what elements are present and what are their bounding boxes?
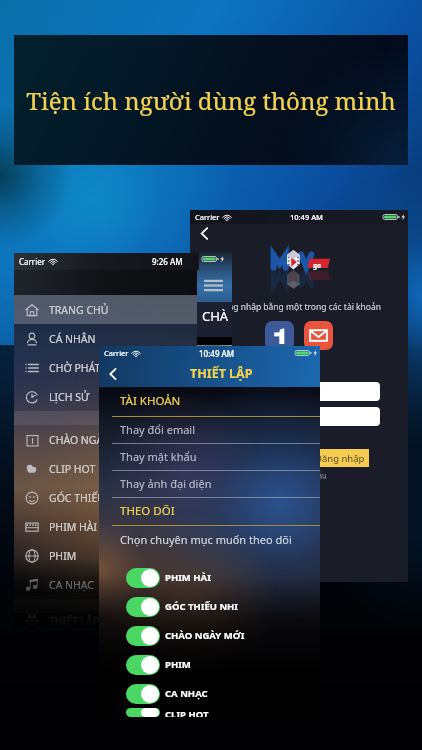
button[interactable]: Menu (203, 279, 223, 292)
button[interactable]: Thay ảnh đại diện (99, 471, 320, 498)
staticText: Thay mật khẩu (120, 449, 197, 464)
button[interactable]: CA NHẠC (14, 570, 197, 599)
staticText: Tiện ích người dùng thông minh (26, 84, 396, 117)
staticText: Chọn chuyên mục muốn theo dõi (120, 532, 292, 547)
staticText: Đăng nhập (315, 452, 365, 465)
staticText: 10:49 AM (290, 212, 323, 222)
staticText: Thay đổi email (120, 422, 196, 437)
staticText: CLIP HOT (165, 708, 209, 717)
staticText: PHIM (165, 658, 191, 671)
staticText: PHIM (49, 549, 77, 563)
button[interactable]: Quên mật khẩu (272, 470, 327, 480)
staticText: GÓC THIẾU NHI (165, 600, 239, 613)
button[interactable]: Back (195, 224, 213, 242)
button[interactable]: Thay mật khẩu (99, 444, 320, 471)
staticText: THIẾT LẬP (190, 365, 253, 382)
button[interactable]: GÓC THIẾU NHI (14, 483, 197, 512)
staticText: Đăng nhập bằng một trong các tài khoản (190, 301, 408, 313)
staticText: go (313, 261, 322, 270)
button[interactable]: Email login (304, 321, 333, 350)
staticText: Thay ảnh đại diện (120, 476, 212, 491)
button[interactable]: CHÀO NGÀY MỚI (14, 425, 197, 454)
staticText: Carrier (195, 212, 220, 222)
staticText: PHIM HÀI (165, 571, 211, 584)
staticText: CÁ NHÂN (49, 332, 96, 346)
button[interactable]: PHIM HÀI (99, 563, 320, 592)
button[interactable]: THIẾT LẬP (14, 613, 197, 628)
button[interactable]: CLIP HOT (99, 708, 320, 717)
button[interactable]: CHÀO NGÀY MỚI (99, 621, 320, 650)
button[interactable]: CA NHẠC (99, 679, 320, 708)
button[interactable] (218, 382, 380, 401)
staticText: CHÀO NGÀY MỚI (165, 629, 245, 642)
button[interactable]: Đăng nhập (310, 449, 369, 467)
button[interactable]: PHIM (14, 541, 197, 570)
staticText: CHÀO NGÀY MỚI (202, 307, 232, 325)
button[interactable]: Thay đổi email (99, 417, 320, 444)
button[interactable] (218, 407, 380, 426)
staticText: CA NHẠC (165, 687, 208, 700)
staticText: 9:26 AM (152, 256, 183, 267)
staticText: CLIP HOT (49, 462, 96, 476)
button[interactable]: GÓC THIẾU NHI (99, 592, 320, 621)
staticText: THEO DÕI (120, 503, 175, 519)
button[interactable]: LỊCH SỬ (14, 382, 197, 411)
staticText: CHÀO NGÀY MỚI (49, 433, 133, 447)
staticText: LỊCH SỬ (49, 390, 90, 404)
button[interactable]: PHIM HÀI (14, 512, 197, 541)
button[interactable]: CHỜ PHÁT (14, 353, 197, 382)
staticText: TRANG CHỦ (49, 303, 109, 317)
staticText: CA NHẠC (49, 578, 94, 592)
staticText: CHỜ PHÁT (49, 361, 101, 375)
staticText: TÀI KHOẢN (120, 393, 181, 409)
button[interactable]: Back (104, 365, 121, 382)
button[interactable]: Facebook login (265, 321, 294, 350)
staticText: PHIM HÀI (49, 520, 97, 534)
button[interactable]: CÁ NHÂN (14, 324, 197, 353)
staticText: GÓC THIẾU NHI (49, 491, 127, 505)
staticText: THIẾT LẬP (49, 614, 100, 628)
staticText: Carrier (104, 348, 129, 358)
button[interactable]: CLIP HOT (14, 454, 197, 483)
button[interactable]: PHIM (99, 650, 320, 679)
staticText: Carrier (19, 256, 46, 267)
button[interactable]: TRANG CHỦ (14, 295, 197, 324)
staticText: 10:49 AM (199, 348, 235, 359)
